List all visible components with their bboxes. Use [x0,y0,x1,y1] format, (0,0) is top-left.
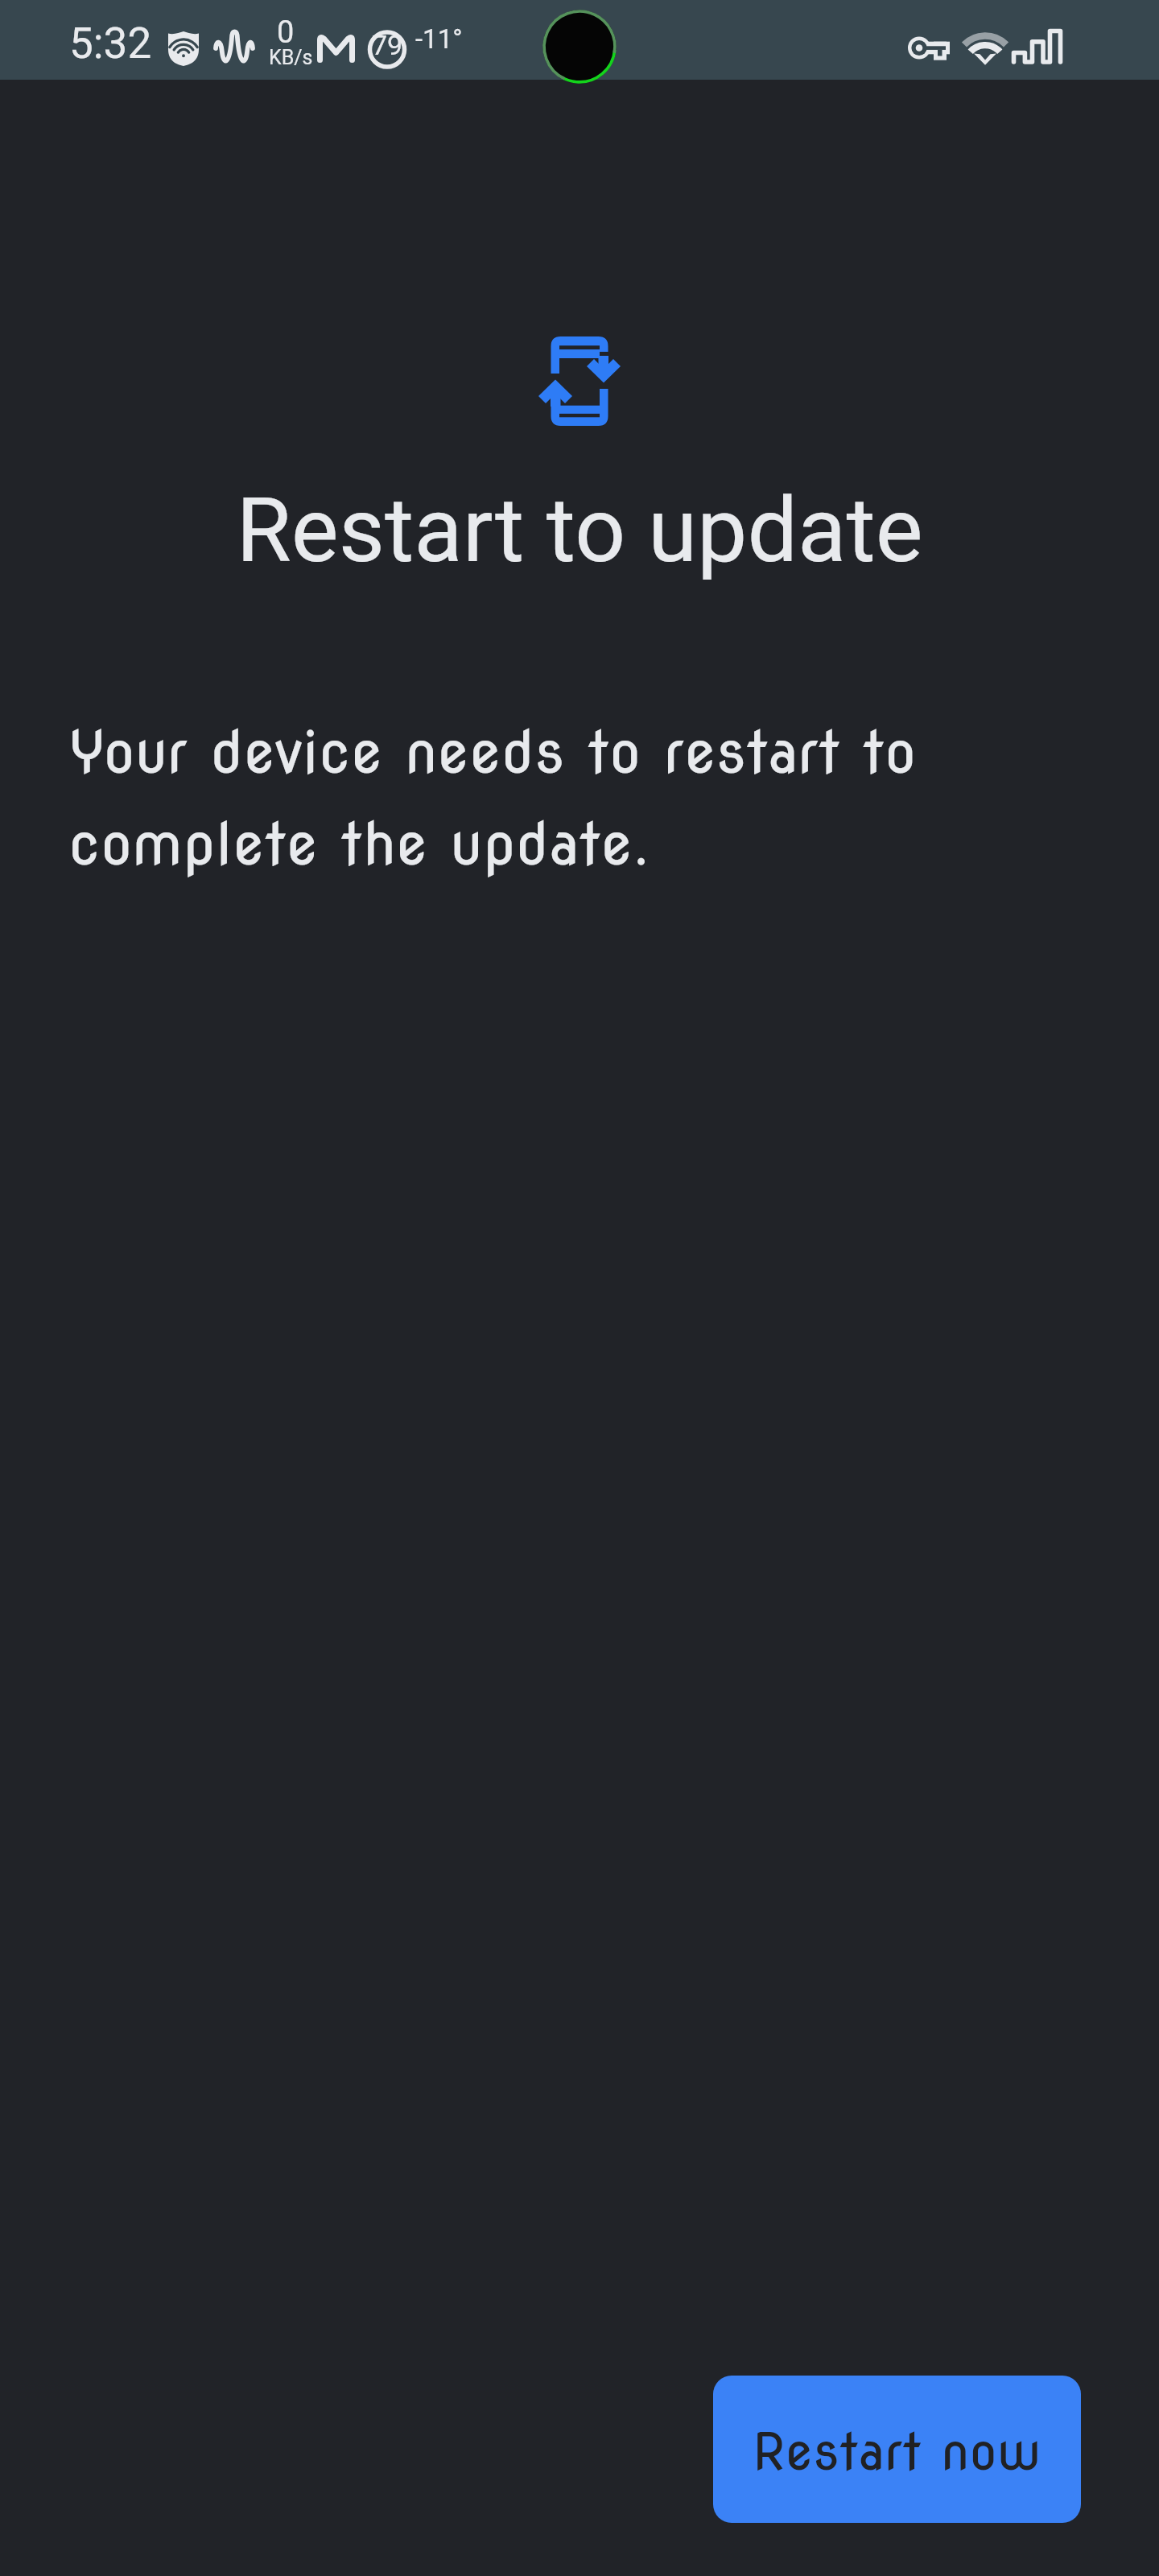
staticText: Your device needs to restart to complete… [68,717,970,878]
staticText: Restart now [753,2421,1041,2483]
staticText: Restart to update [0,478,1159,583]
staticText: KB/s [269,46,313,69]
button[interactable]: Restart now [713,2376,1081,2523]
staticText: 5:32 [69,19,152,68]
staticText: -11° [415,23,463,55]
staticText: 79 [372,29,403,61]
staticText: 0 [277,14,295,51]
